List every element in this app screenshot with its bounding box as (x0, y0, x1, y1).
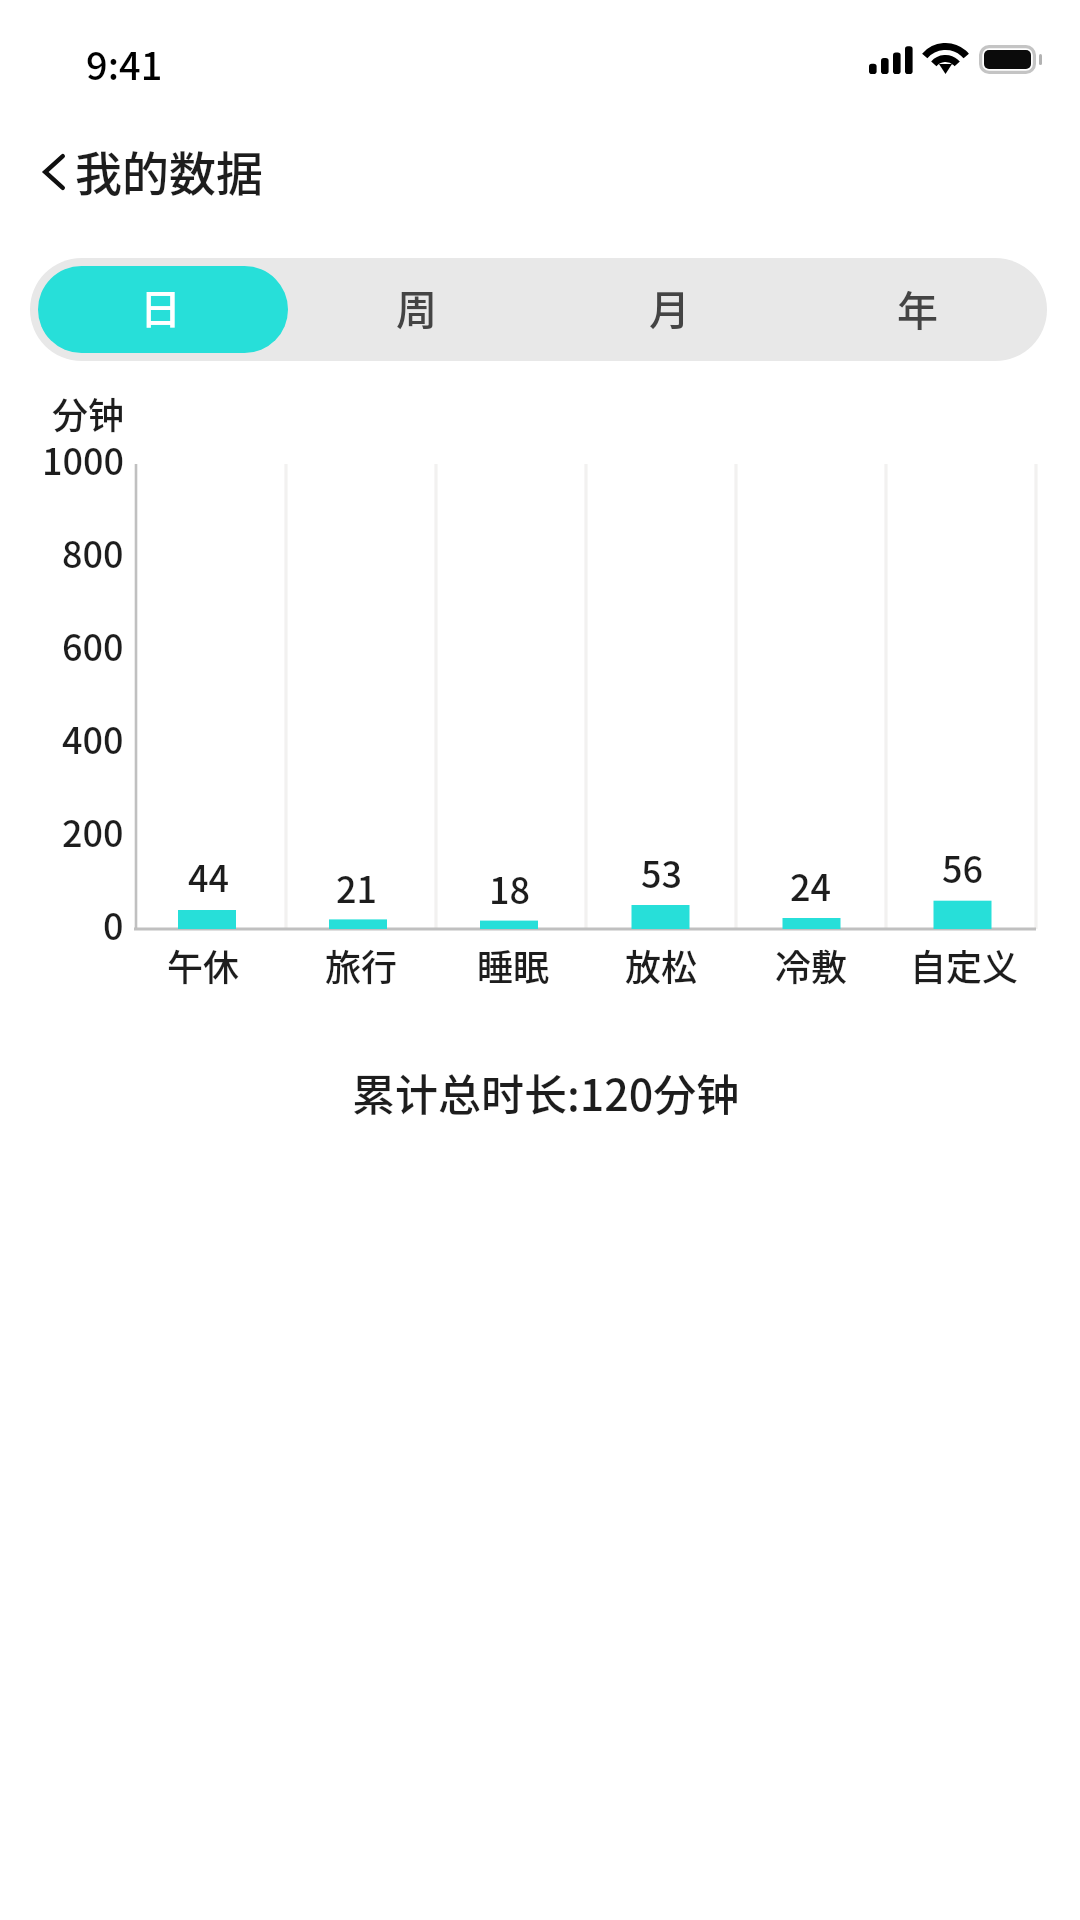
staticText: 午休 (167, 939, 240, 991)
staticText: 周 (396, 277, 437, 336)
staticText: 日 (140, 276, 181, 335)
button[interactable]: 月 (539, 266, 789, 353)
staticText: 200 (62, 805, 124, 857)
staticText: 放松 (625, 939, 698, 991)
staticText: 冷敷 (775, 939, 848, 991)
staticText: 24 (790, 859, 832, 911)
staticText: 21 (336, 861, 378, 913)
staticText: 600 (62, 619, 124, 671)
button[interactable]: 日 (38, 266, 288, 353)
staticText: 53 (641, 846, 683, 898)
staticText: 自定义 (910, 939, 1019, 991)
staticText: 睡眠 (477, 939, 550, 991)
staticText: 44 (188, 850, 230, 902)
staticText: 800 (62, 526, 124, 578)
button[interactable]: Back (24, 140, 84, 204)
staticText: 分钟 (52, 387, 125, 439)
staticText: 9:41 (86, 36, 163, 91)
staticText: 累计总时长:120分钟 (352, 1061, 740, 1123)
button[interactable]: 年 (789, 266, 1039, 353)
staticText: 我的数据 (75, 136, 263, 204)
staticText: 0 (103, 898, 124, 950)
staticText: 18 (489, 862, 531, 914)
staticText: 1000 (42, 433, 125, 485)
staticText: 月 (649, 277, 690, 336)
button[interactable]: 周 (288, 266, 538, 353)
staticText: 400 (62, 712, 124, 764)
staticText: 年 (897, 278, 938, 337)
staticText: 56 (942, 841, 984, 893)
staticText: 旅行 (325, 939, 398, 991)
